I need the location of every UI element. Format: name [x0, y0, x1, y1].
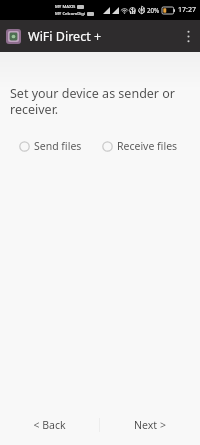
staticText: < Back [33, 418, 66, 432]
staticText: MY MAXIS [55, 4, 76, 10]
button[interactable]: Receive files [101, 137, 179, 155]
button[interactable]: Next > [100, 405, 200, 445]
staticText: Set your device as sender or receiver. [10, 85, 186, 118]
button[interactable]: < Back [0, 405, 99, 445]
staticText: WiFi Direct + [28, 28, 102, 45]
staticText: 17:27 [178, 5, 196, 15]
staticText: Receive files [117, 139, 178, 153]
staticText: 20% [147, 6, 160, 14]
staticText: Next > [134, 418, 166, 432]
button[interactable]: More options [176, 20, 200, 52]
button[interactable]: Send files [18, 137, 83, 155]
staticText: Send files [34, 139, 82, 153]
staticText: MY CelcomDigi [55, 11, 86, 17]
